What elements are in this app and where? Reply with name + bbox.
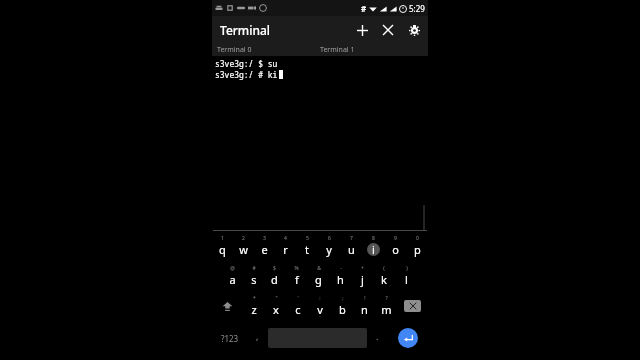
staticText: 7	[350, 235, 353, 242]
staticText: %	[294, 265, 299, 272]
button[interactable]: .	[367, 321, 388, 355]
button[interactable]: +	[351, 261, 373, 291]
button[interactable]: 6	[318, 231, 340, 261]
staticText: c	[295, 302, 301, 317]
staticText: :	[319, 295, 321, 302]
staticText: Terminal 0	[217, 45, 252, 55]
staticText: i	[372, 242, 375, 257]
staticText: "	[275, 295, 278, 302]
button[interactable]: ,	[247, 321, 268, 355]
staticText: t	[305, 242, 309, 257]
button[interactable]: "	[265, 291, 287, 321]
staticText: s3ve3g:/ # ki	[215, 69, 278, 80]
button[interactable]: #	[243, 261, 264, 291]
staticText: o	[392, 242, 399, 257]
staticText: +	[361, 265, 364, 272]
button[interactable]: New session	[353, 21, 371, 39]
button[interactable]: Shift	[212, 291, 243, 321]
button[interactable]: !	[353, 291, 375, 321]
button[interactable]: Backspace	[397, 291, 428, 321]
staticText: x	[273, 302, 279, 317]
staticText: #	[252, 265, 256, 272]
staticText: q	[219, 242, 226, 257]
staticText: s	[251, 272, 257, 287]
staticText: v	[317, 302, 323, 317]
button[interactable]: &	[307, 261, 329, 291]
button[interactable]: 2	[233, 231, 254, 261]
staticText: 5	[306, 235, 309, 242]
button[interactable]: Enter	[398, 328, 418, 348]
staticText: ,	[256, 330, 259, 342]
staticText: a	[229, 272, 236, 287]
button[interactable]: Close session	[379, 21, 397, 39]
button[interactable]: 1	[212, 231, 233, 261]
button[interactable]: @	[222, 261, 243, 291]
staticText: 6	[328, 235, 331, 242]
button[interactable]: 7	[340, 231, 362, 261]
staticText: (	[383, 265, 385, 272]
button[interactable]: 8	[362, 231, 384, 261]
staticText: ?123	[221, 333, 239, 344]
staticText: .	[376, 330, 379, 342]
staticText: h	[337, 272, 344, 287]
staticText: f	[295, 272, 299, 287]
button[interactable]: *	[243, 291, 265, 321]
staticText: w	[239, 242, 248, 257]
staticText: '	[297, 295, 299, 302]
staticText: 2	[242, 235, 245, 242]
staticText: ;	[342, 295, 344, 302]
button[interactable]: ?	[375, 291, 397, 321]
staticText: 1	[221, 235, 224, 242]
staticText: j	[361, 272, 364, 287]
staticText: 8	[372, 235, 375, 242]
button[interactable]: '	[287, 291, 309, 321]
staticText: $	[273, 265, 276, 272]
staticText: Terminal	[220, 22, 271, 38]
staticText: 0	[416, 235, 419, 242]
button[interactable]: Terminal 1	[320, 43, 428, 56]
staticText: n	[361, 302, 368, 317]
button[interactable]: 4	[275, 231, 296, 261]
staticText: g	[315, 272, 322, 287]
staticText: 3	[263, 235, 266, 242]
staticText: @	[230, 265, 235, 272]
staticText: )	[406, 265, 408, 272]
button[interactable]: 0	[406, 231, 428, 261]
button[interactable]: 5	[296, 231, 318, 261]
staticText: l	[405, 272, 408, 287]
button[interactable]: :	[309, 291, 331, 321]
button[interactable]: )	[395, 261, 417, 291]
staticText: ?	[385, 295, 388, 302]
staticText: s3ve3g:/ $ su	[215, 58, 278, 69]
button[interactable]: Settings	[405, 21, 423, 39]
staticText: y	[326, 242, 332, 257]
staticText: -	[340, 265, 342, 272]
staticText: b	[339, 302, 346, 317]
staticText: r	[283, 242, 288, 257]
staticText: *	[253, 295, 256, 302]
staticText: &	[317, 265, 321, 272]
button[interactable]: ;	[331, 291, 353, 321]
staticText: #	[361, 3, 367, 14]
staticText: 4	[284, 235, 287, 242]
staticText: d	[271, 272, 278, 287]
button[interactable]: ?123	[212, 321, 247, 355]
staticText: 5:29	[409, 3, 425, 14]
staticText: k	[381, 272, 387, 287]
staticText: z	[251, 302, 257, 317]
button[interactable]: 9	[384, 231, 406, 261]
button[interactable]: (	[373, 261, 395, 291]
button[interactable]: $	[264, 261, 285, 291]
staticText: u	[348, 242, 355, 257]
button[interactable]: %	[285, 261, 307, 291]
button[interactable]: 3	[254, 231, 275, 261]
staticText: p	[414, 242, 421, 257]
staticText: !	[364, 295, 366, 302]
button[interactable]: -	[329, 261, 351, 291]
staticText: e	[261, 242, 268, 257]
staticText: m	[381, 302, 392, 317]
staticText: 9	[394, 235, 397, 242]
button[interactable]: Terminal 0	[212, 43, 320, 56]
staticText: Terminal 1	[320, 45, 355, 55]
